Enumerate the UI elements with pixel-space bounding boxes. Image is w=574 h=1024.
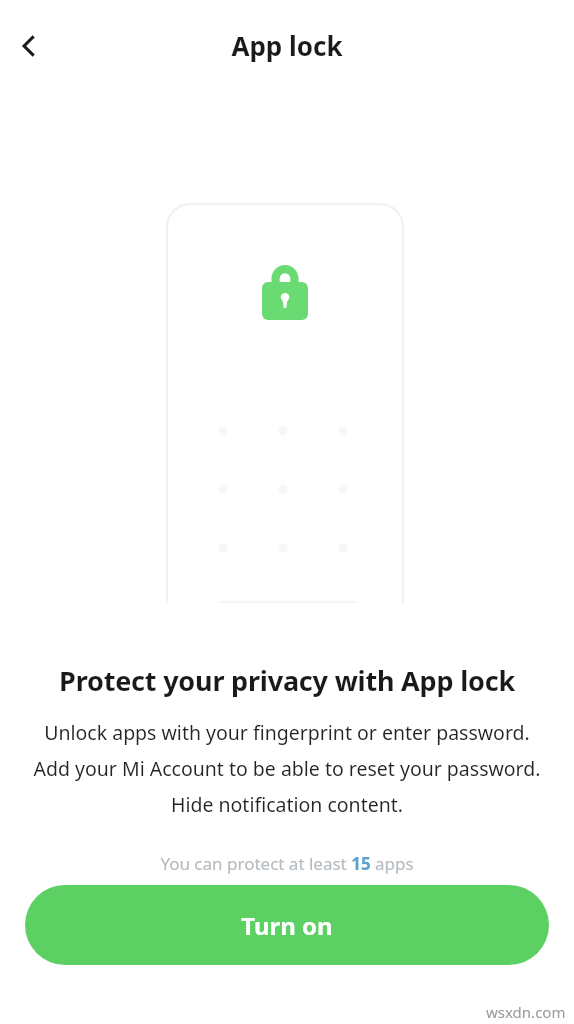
staticText: wsxdn.com	[486, 1002, 566, 1022]
staticText: You can protect at least 15 apps	[0, 852, 574, 875]
staticText: Turn on	[241, 909, 333, 942]
staticText: App lock	[231, 28, 343, 63]
staticText: Protect your privacy with App lock	[59, 662, 515, 699]
staticText: Unlock apps with your fingerprint or ent…	[0, 719, 574, 818]
button[interactable]: Turn on	[25, 885, 549, 965]
button[interactable]: Back	[4, 21, 54, 71]
